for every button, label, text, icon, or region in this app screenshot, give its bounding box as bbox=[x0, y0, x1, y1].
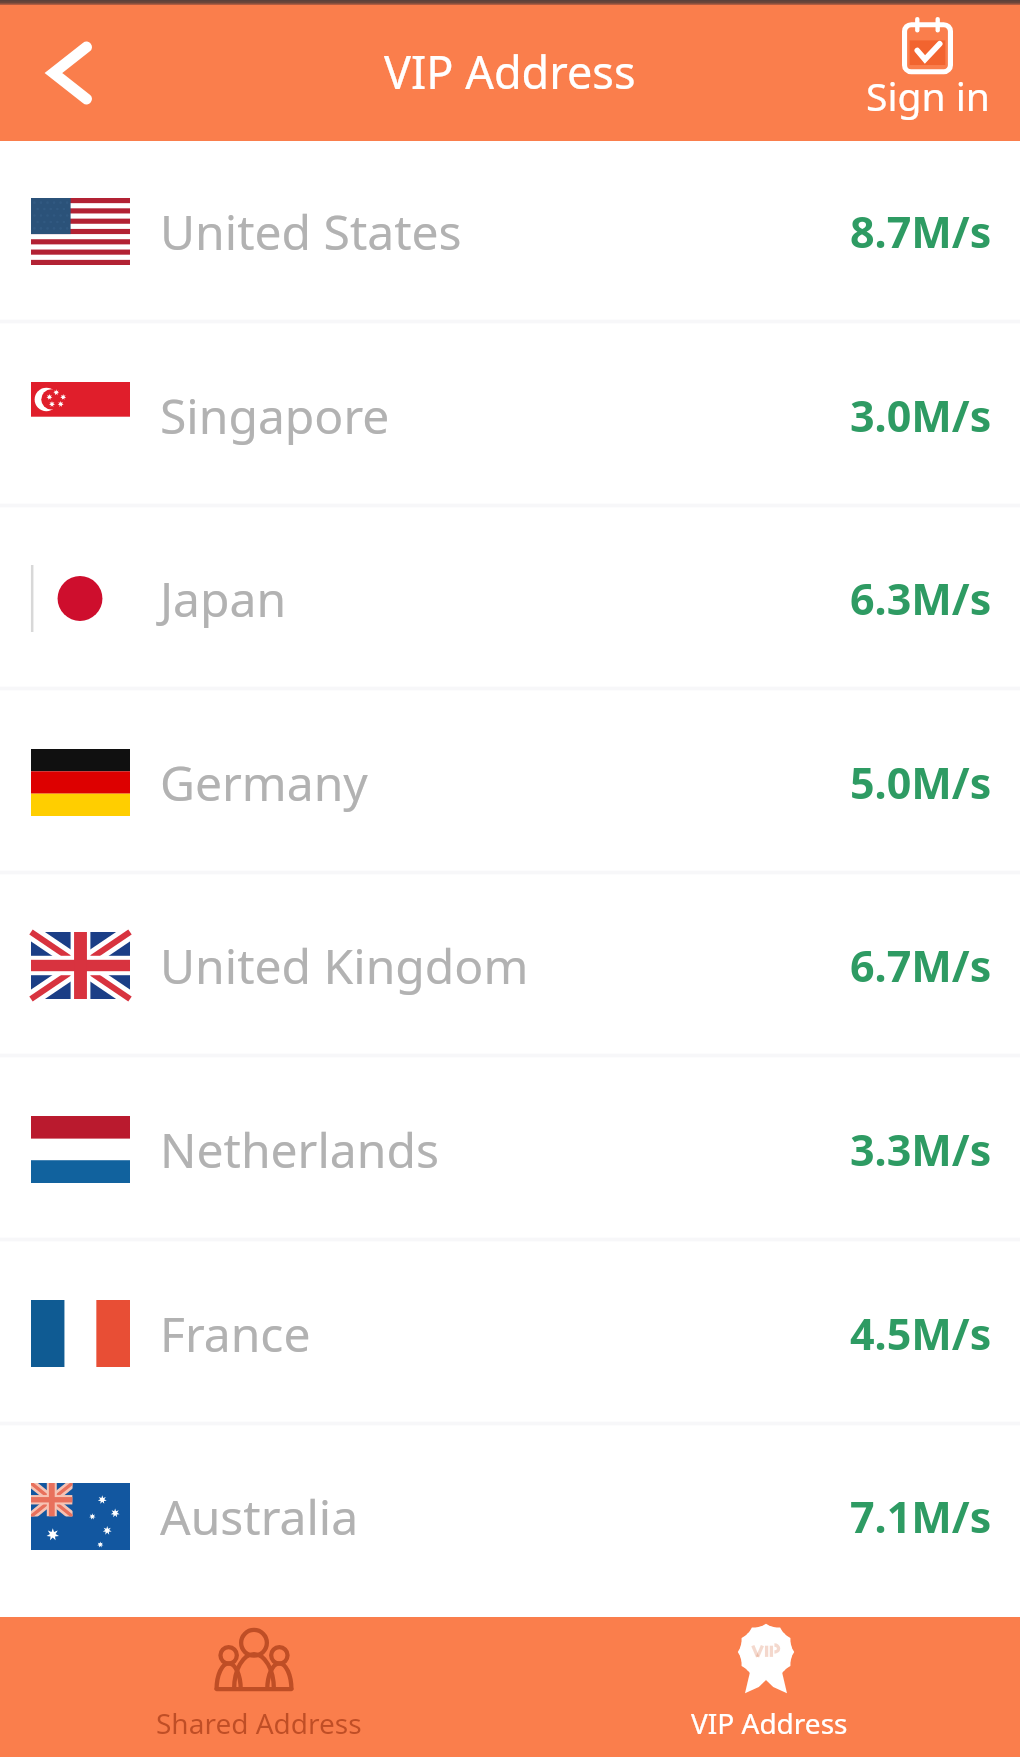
staticText: Sign in bbox=[866, 69, 990, 122]
staticText: Singapore bbox=[160, 383, 390, 448]
staticText: 6.7M/s bbox=[850, 936, 992, 995]
staticText: 5.0M/s bbox=[850, 753, 992, 812]
button[interactable]: Shared Address bbox=[0, 1617, 510, 1757]
button[interactable]: United Kingdom bbox=[0, 873, 1020, 1057]
staticText: United Kingdom bbox=[160, 933, 529, 998]
button[interactable]: Singapore bbox=[0, 323, 1020, 507]
staticText: 4.5M/s bbox=[850, 1304, 992, 1363]
staticText: Japan bbox=[160, 566, 287, 631]
staticText: Australia bbox=[160, 1484, 359, 1549]
staticText: Netherlands bbox=[160, 1117, 439, 1182]
staticText: United States bbox=[160, 199, 462, 264]
button[interactable]: France bbox=[0, 1241, 1020, 1425]
button[interactable]: Germany bbox=[0, 690, 1020, 874]
button[interactable]: Netherlands bbox=[0, 1057, 1020, 1241]
staticText: 3.3M/s bbox=[850, 1120, 992, 1179]
button[interactable]: United States bbox=[0, 139, 1020, 323]
button[interactable]: Sign in bbox=[840, 5, 1015, 141]
button[interactable]: VIP Address bbox=[510, 1617, 1020, 1757]
button[interactable]: Back bbox=[0, 5, 136, 141]
staticText: 3.0M/s bbox=[850, 386, 992, 445]
button[interactable]: Japan bbox=[0, 506, 1020, 690]
staticText: VIP Address bbox=[691, 1704, 848, 1742]
button[interactable]: Australia bbox=[0, 1424, 1020, 1608]
staticText: 6.3M/s bbox=[850, 569, 992, 628]
staticText: 7.1M/s bbox=[850, 1487, 992, 1546]
staticText: France bbox=[160, 1301, 311, 1366]
staticText: Shared Address bbox=[156, 1704, 362, 1742]
staticText: VIP Address bbox=[384, 41, 636, 102]
staticText: Germany bbox=[160, 750, 368, 815]
staticText: 8.7M/s bbox=[850, 202, 992, 261]
